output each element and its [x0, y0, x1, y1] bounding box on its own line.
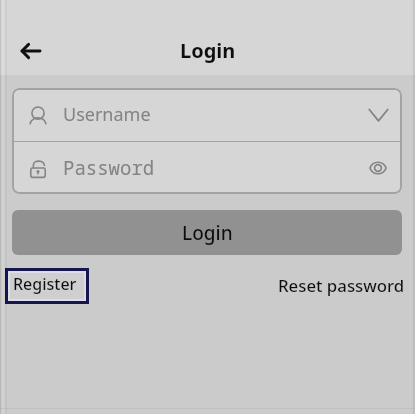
staticText: Password: [63, 155, 155, 181]
button[interactable]: Reset password: [278, 274, 405, 297]
button[interactable]: Username: [12, 88, 402, 141]
staticText: Username: [63, 102, 151, 127]
button[interactable]: Back: [11, 31, 51, 71]
staticText: Login: [180, 37, 236, 64]
button[interactable]: Register: [10, 273, 84, 299]
staticText: Reset password: [278, 274, 405, 297]
button[interactable]: Show password: [369, 160, 387, 176]
button[interactable]: Password: [12, 142, 402, 194]
staticText: Register: [13, 273, 77, 295]
staticText: Login: [182, 220, 233, 246]
button[interactable]: Login: [12, 210, 402, 255]
button[interactable]: Expand username options: [368, 105, 389, 123]
